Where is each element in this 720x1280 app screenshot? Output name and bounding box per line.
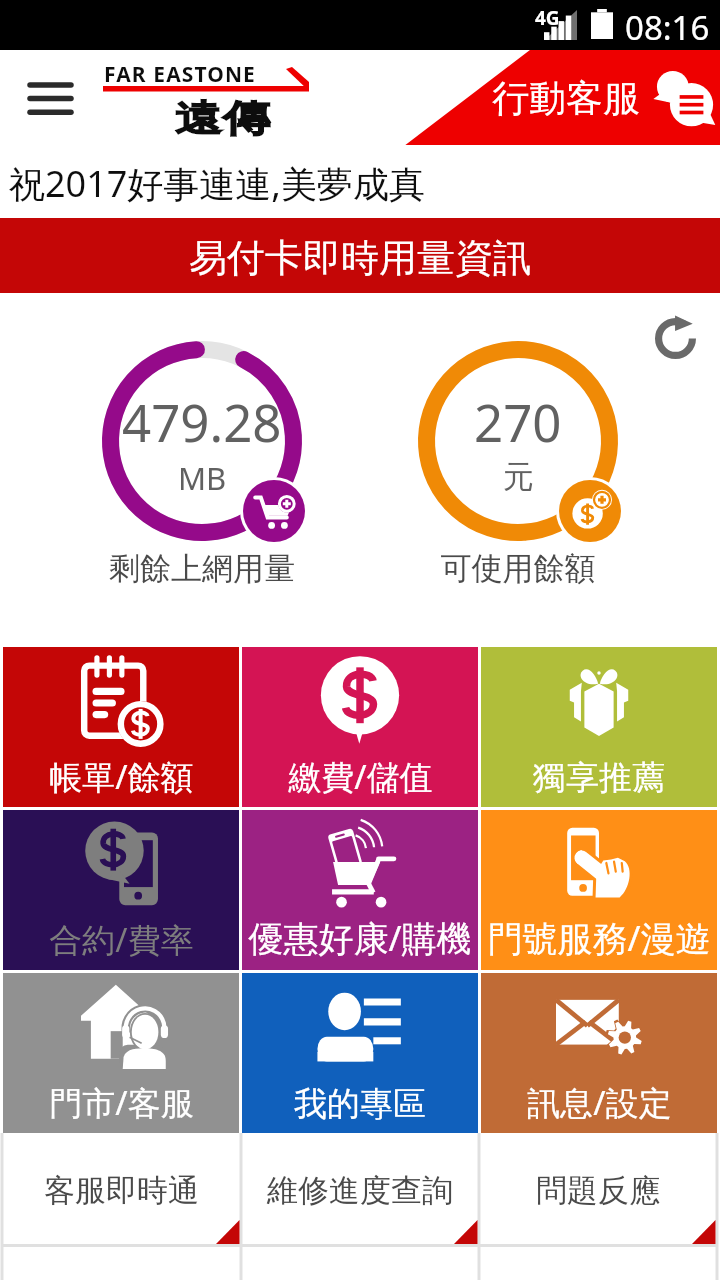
staticText: 客服即時通 (44, 1171, 199, 1210)
button[interactable]: 客服即時通 (2, 1133, 241, 1247)
button[interactable]: 我的專區 (242, 973, 478, 1133)
staticText: 祝2017好事連連,美夢成真 (9, 159, 426, 208)
button[interactable]: Menu (18, 72, 83, 124)
staticText: 08:16 (625, 5, 710, 50)
staticText: 行動客服 (492, 75, 640, 122)
button[interactable]: Buy data (243, 480, 305, 542)
button[interactable]: Top up (559, 480, 621, 542)
staticText: 帳單/餘額 (49, 754, 194, 799)
button[interactable]: 門號服務/漫遊 (481, 810, 717, 970)
staticText: 繳費/儲值 (288, 754, 433, 799)
staticText: 易付卡即時用量資訊 (189, 234, 531, 282)
staticText: 可使用餘額 (358, 549, 678, 588)
button[interactable]: 訊息/設定 (481, 973, 717, 1133)
staticText: 元 (503, 457, 534, 496)
staticText: 4G (535, 5, 560, 31)
staticText: 我的專區 (294, 1083, 426, 1125)
button[interactable]: Refresh (645, 307, 705, 367)
staticText: 訊息/設定 (527, 1080, 672, 1125)
staticText: 維修進度查詢 (267, 1171, 453, 1210)
staticText: 問題反應 (536, 1171, 660, 1210)
staticText: 剩餘上網用量 (42, 549, 362, 588)
staticText: 合約/費率 (49, 917, 194, 962)
button[interactable]: 維修進度查詢 (241, 1133, 479, 1247)
staticText: FAR EASTONE (104, 60, 256, 89)
staticText: 獨享推薦 (533, 757, 665, 799)
button[interactable]: 行動客服 (492, 70, 716, 126)
staticText: 門市/客服 (49, 1080, 194, 1125)
button[interactable]: 合約/費率 (3, 810, 239, 970)
button[interactable]: 門市/客服 (3, 973, 239, 1133)
staticText: 479.28 (122, 387, 282, 456)
button[interactable]: 優惠好康/購機 (242, 810, 478, 970)
button[interactable] (241, 1247, 479, 1280)
button[interactable]: 問題反應 (479, 1133, 717, 1247)
staticText: 遠傳 (175, 95, 270, 141)
staticText: MB (178, 457, 227, 499)
button[interactable] (479, 1247, 717, 1280)
staticText: 270 (474, 387, 562, 456)
button[interactable]: 獨享推薦 (481, 647, 717, 807)
button[interactable] (2, 1247, 241, 1280)
staticText: 門號服務/漫遊 (487, 914, 711, 962)
staticText: 優惠好康/購機 (248, 914, 472, 962)
button[interactable]: 帳單/餘額 (3, 647, 239, 807)
button[interactable]: 繳費/儲值 (242, 647, 478, 807)
